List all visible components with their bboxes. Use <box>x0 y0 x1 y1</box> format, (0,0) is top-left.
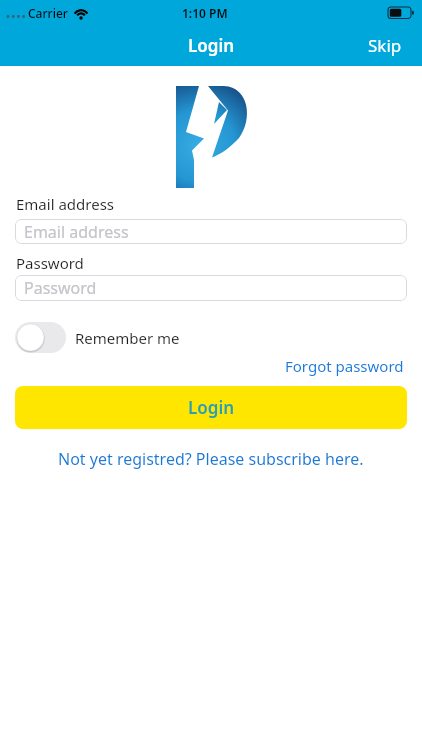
button[interactable]: Remember me <box>15 322 180 353</box>
staticText: Login <box>188 396 235 419</box>
button[interactable]: Not yet registred? Please subscribe here… <box>58 448 364 470</box>
button[interactable]: Skip <box>368 34 402 57</box>
staticText: Carrier <box>28 5 68 21</box>
staticText: 1:10 PM <box>182 5 228 21</box>
button[interactable]: Login <box>15 386 407 429</box>
staticText: Login <box>188 34 235 57</box>
staticText: Email address <box>16 194 115 214</box>
staticText: Password <box>16 253 84 273</box>
button[interactable]: Forgot password <box>285 356 404 376</box>
staticText: Remember me <box>75 328 180 348</box>
button[interactable]: Email address <box>15 219 407 244</box>
button[interactable] <box>15 322 66 353</box>
button[interactable]: Password <box>15 275 407 301</box>
staticText: Password <box>24 277 97 299</box>
staticText: Email address <box>24 221 129 243</box>
